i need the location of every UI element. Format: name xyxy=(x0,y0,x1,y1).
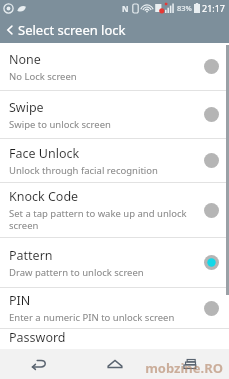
button[interactable]: Back xyxy=(0,16,229,43)
button[interactable]: None xyxy=(0,43,229,90)
button[interactable]: Knock Code xyxy=(0,183,229,237)
button[interactable]: Recents xyxy=(153,349,229,379)
staticText: Swipe xyxy=(9,99,44,116)
staticText: Enter a numeric PIN to unlock screen xyxy=(9,311,175,324)
staticText: None xyxy=(9,51,41,68)
button[interactable]: PIN xyxy=(0,288,229,328)
staticText: mobzine.RO xyxy=(145,359,223,377)
button[interactable]: Password xyxy=(0,329,229,343)
staticText: Select screen lock xyxy=(18,21,126,39)
button[interactable]: Pattern xyxy=(0,238,229,287)
staticText: 21:17 xyxy=(202,2,226,14)
staticText: Password xyxy=(9,329,66,343)
button[interactable]: Back xyxy=(0,349,77,379)
staticText: Pattern xyxy=(9,247,53,264)
button[interactable]: Swipe xyxy=(0,91,229,138)
button[interactable]: Home xyxy=(77,349,153,379)
staticText: Draw pattern to unlock screen xyxy=(9,266,144,279)
staticText: No Lock screen xyxy=(9,70,77,83)
staticText: N xyxy=(122,3,129,14)
staticText: Face Unlock xyxy=(9,145,80,162)
staticText: 83% xyxy=(177,3,192,13)
staticText: Knock Code xyxy=(9,188,79,205)
staticText: Set a tap pattern to wake up and unlock … xyxy=(9,207,198,232)
button[interactable]: Face Unlock xyxy=(0,139,229,182)
other: Back xyxy=(4,24,16,36)
staticText: PIN xyxy=(9,292,31,309)
staticText: Unlock through facial recognition xyxy=(9,164,158,177)
staticText: Swipe to unlock screen xyxy=(9,118,111,131)
